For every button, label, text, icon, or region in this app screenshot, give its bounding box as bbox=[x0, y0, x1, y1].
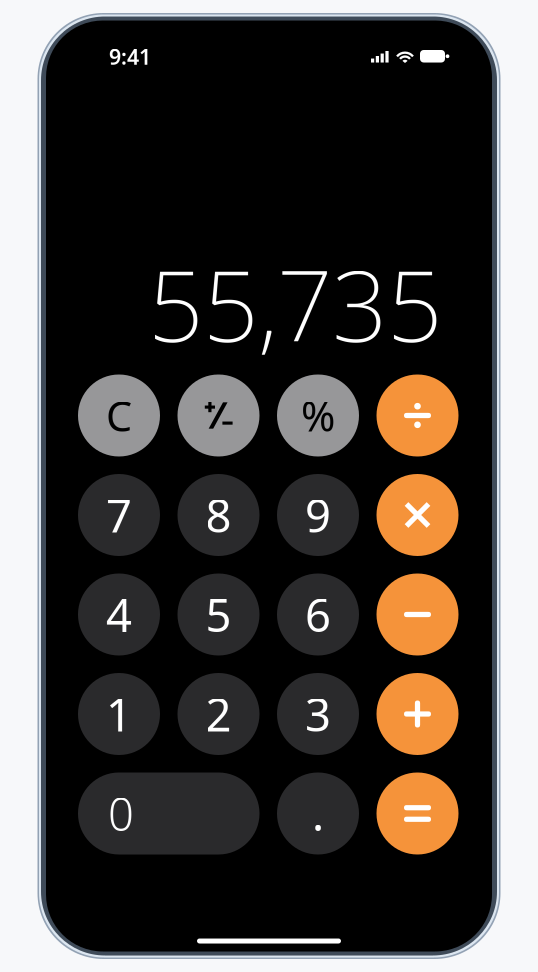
button[interactable]: Plus bbox=[376, 673, 458, 755]
staticText: 9:41 bbox=[109, 42, 151, 71]
button[interactable]: 2 bbox=[177, 673, 259, 755]
button[interactable]: 4 bbox=[78, 573, 160, 655]
staticText: 1 bbox=[106, 684, 132, 744]
staticText: 55,735 bbox=[148, 239, 442, 368]
staticText: 7 bbox=[106, 485, 132, 545]
button[interactable]: 9 bbox=[277, 474, 359, 556]
button[interactable]: Minus bbox=[376, 573, 458, 655]
button[interactable]: 0 bbox=[78, 772, 259, 854]
staticText: 2 bbox=[205, 684, 231, 744]
staticText: 5 bbox=[205, 584, 231, 645]
button[interactable]: 7 bbox=[78, 474, 160, 556]
button[interactable]: 8 bbox=[177, 474, 259, 556]
button[interactable]: % bbox=[277, 374, 359, 456]
staticText: 4 bbox=[106, 584, 132, 645]
staticText: 6 bbox=[305, 584, 331, 645]
button[interactable]: 3 bbox=[277, 673, 359, 755]
staticText: C bbox=[106, 388, 132, 443]
button[interactable]: Divide bbox=[376, 374, 458, 456]
staticText: 9 bbox=[305, 485, 331, 545]
button[interactable]: 1 bbox=[78, 673, 160, 755]
staticText: % bbox=[301, 388, 335, 443]
button[interactable]: C bbox=[78, 374, 160, 456]
staticText: 8 bbox=[205, 485, 231, 545]
staticText: 3 bbox=[305, 684, 331, 744]
button[interactable]: 5 bbox=[177, 573, 259, 655]
button[interactable]: Plus Minus bbox=[177, 374, 259, 456]
staticText: . bbox=[312, 783, 324, 844]
button[interactable]: . bbox=[277, 772, 359, 854]
staticText: 0 bbox=[108, 783, 134, 844]
button[interactable]: Equals bbox=[376, 772, 458, 854]
button[interactable]: Multiply bbox=[376, 474, 458, 556]
button[interactable]: 6 bbox=[277, 573, 359, 655]
